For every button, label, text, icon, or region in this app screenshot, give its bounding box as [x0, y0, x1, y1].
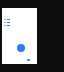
button[interactable]: [2, 21, 37, 24]
button[interactable]: [2, 18, 37, 21]
button[interactable]: [2, 24, 37, 27]
button[interactable]: Add: [17, 44, 25, 52]
button[interactable]: Action: [27, 59, 30, 61]
